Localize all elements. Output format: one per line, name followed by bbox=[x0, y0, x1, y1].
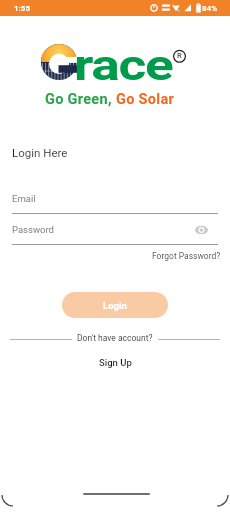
button[interactable]: Email bbox=[8, 190, 222, 214]
staticText: Login bbox=[103, 300, 127, 311]
staticText: Go Solar bbox=[116, 91, 175, 108]
button[interactable] bbox=[193, 222, 210, 237]
button[interactable]: Login bbox=[62, 292, 168, 318]
button[interactable]: Forgot Password? bbox=[140, 248, 224, 264]
staticText: race bbox=[74, 41, 172, 90]
staticText: Don't have account? bbox=[77, 333, 153, 343]
staticText: Forgot Password? bbox=[152, 251, 221, 261]
staticText: 84% bbox=[202, 4, 218, 13]
button[interactable]: Password bbox=[8, 221, 222, 245]
staticText: Go Green, bbox=[45, 91, 116, 108]
staticText: Sign Up bbox=[99, 357, 132, 368]
staticText: R bbox=[177, 51, 182, 60]
staticText: Email bbox=[12, 193, 36, 204]
staticText: Login Here bbox=[12, 146, 68, 159]
button[interactable]: Sign Up bbox=[88, 353, 142, 371]
staticText: 1:55 bbox=[14, 4, 31, 13]
staticText: Password bbox=[12, 224, 54, 235]
